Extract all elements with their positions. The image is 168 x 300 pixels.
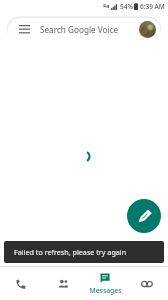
staticText: 54% <box>120 2 133 11</box>
button[interactable]: Messages <box>84 267 126 300</box>
staticText: Messages <box>89 286 122 295</box>
staticText: Failed to refresh, please try again <box>14 247 127 257</box>
staticText: Search Google Voice <box>40 24 119 35</box>
button[interactable]: Voicemail <box>126 267 168 300</box>
button[interactable]: Calls <box>0 267 42 300</box>
button[interactable]: Account <box>139 21 156 38</box>
button[interactable]: Open navigation menu <box>7 16 161 42</box>
button[interactable]: Failed to refresh, please try again <box>4 241 164 263</box>
button[interactable]: Compose new message <box>127 199 161 233</box>
button[interactable]: Open navigation menu <box>17 22 31 36</box>
staticText: 6:39 AM <box>140 2 165 11</box>
button[interactable]: Contacts <box>42 267 84 300</box>
